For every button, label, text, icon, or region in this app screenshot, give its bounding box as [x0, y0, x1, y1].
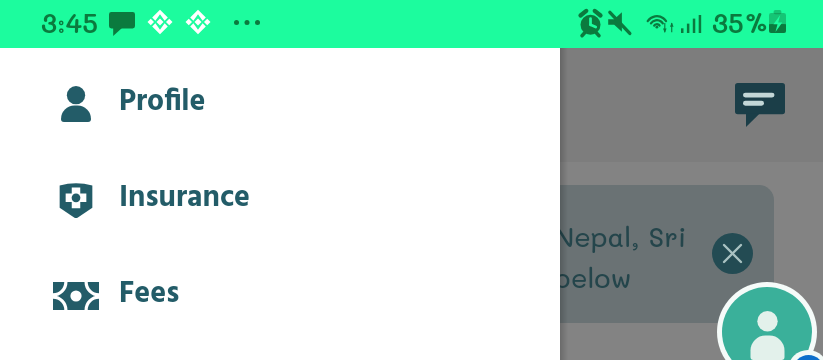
button[interactable]: Messages [729, 74, 791, 136]
button[interactable]: Profile avatar [717, 282, 817, 360]
staticText: Fees [119, 270, 180, 318]
staticText: Profile [119, 78, 206, 126]
staticText: India, Nepal, Sri [467, 219, 687, 254]
button[interactable]: Close [712, 233, 753, 274]
staticText: 35% [712, 5, 769, 40]
button[interactable]: India, Nepal, Sri [430, 185, 774, 323]
staticText: 3:45 [41, 5, 99, 40]
staticText: Insurance [119, 174, 251, 222]
button[interactable]: Insurance [0, 149, 560, 245]
button[interactable]: Fees [0, 245, 560, 341]
button[interactable]: Profile [0, 53, 560, 149]
staticText: Lanka below [467, 260, 632, 295]
